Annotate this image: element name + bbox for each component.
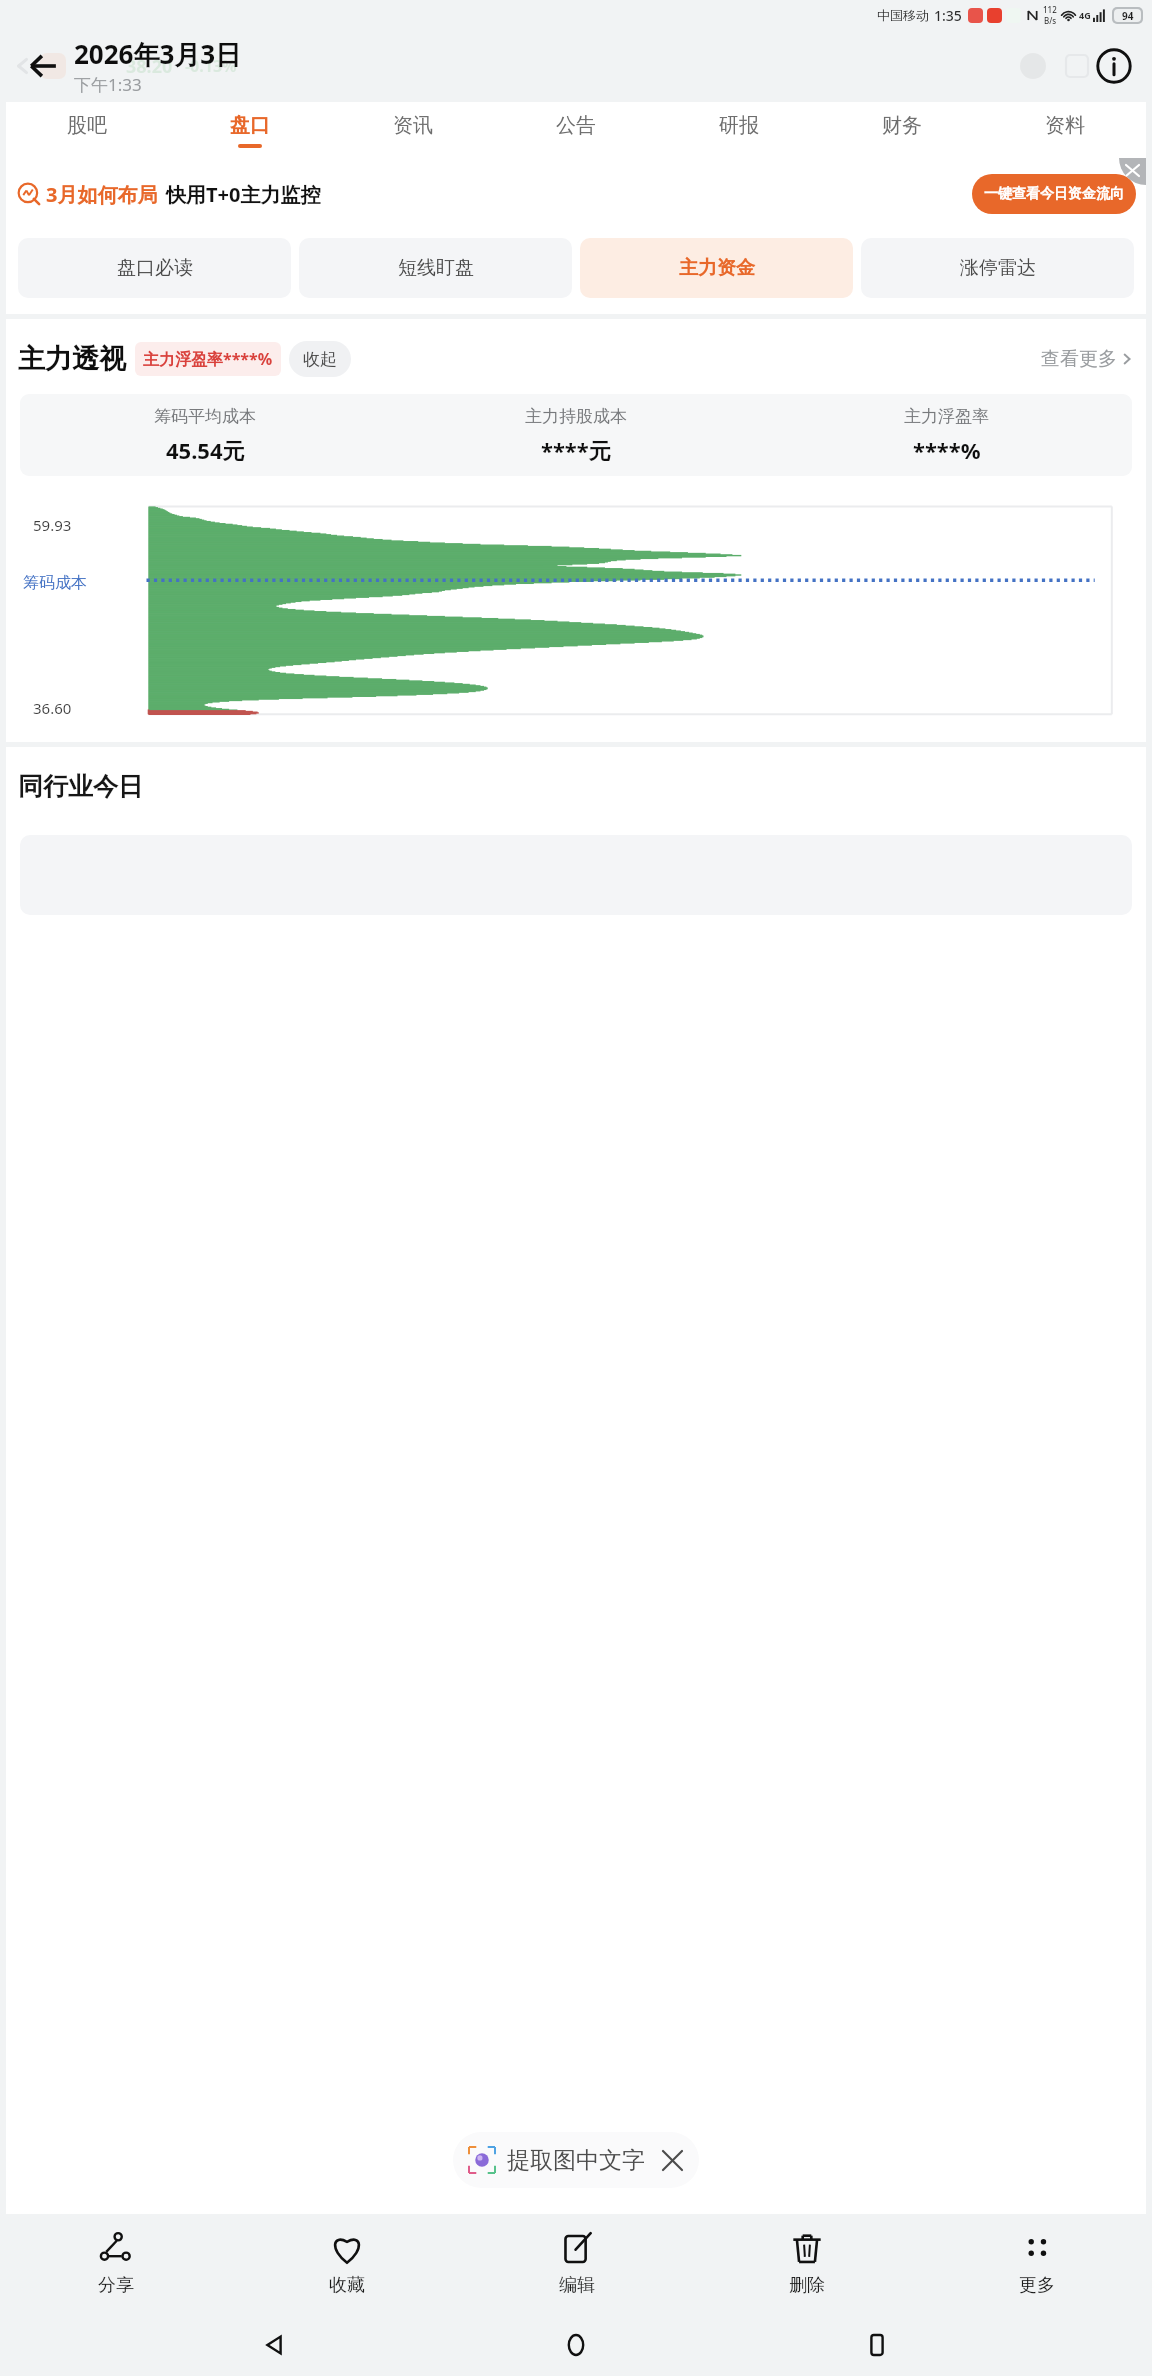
button[interactable]: 3月如何布局	[18, 170, 1136, 218]
staticText: 盘口	[230, 113, 270, 138]
button[interactable]: 研报	[657, 102, 820, 158]
staticText: -0.13%	[185, 55, 237, 77]
staticText: 资料	[1045, 113, 1085, 138]
staticText: 分享	[98, 2274, 134, 2297]
staticText: 主力透视	[18, 342, 126, 376]
staticText: 1:35	[934, 6, 962, 25]
staticText: 查看更多	[1041, 347, 1117, 371]
staticText: 删除	[789, 2274, 825, 2297]
button[interactable]: 股吧	[6, 102, 168, 158]
staticText: 36.60	[33, 698, 72, 718]
button[interactable]: 盘口必读	[18, 238, 291, 298]
staticText: 短线盯盘	[398, 256, 474, 280]
staticText: 筹码成本	[23, 573, 87, 593]
button[interactable]: Back	[249, 2319, 301, 2371]
staticText: 资讯	[393, 113, 433, 138]
staticText: 112	[1043, 4, 1057, 15]
staticText: 38.20	[126, 54, 173, 79]
staticText: 股吧	[67, 113, 107, 138]
button[interactable]: 一键查看今日资金流向	[984, 174, 1124, 214]
staticText: 快用T+0主力监控	[166, 181, 321, 208]
staticText: 公告	[556, 113, 596, 138]
button[interactable]: 查看更多	[1041, 347, 1134, 371]
staticText: 主力浮盈率	[904, 406, 989, 427]
staticText: 4G	[1079, 9, 1091, 21]
staticText: 盘口必读	[117, 256, 193, 280]
staticText: 提取图中文字	[507, 2146, 645, 2175]
staticText: B/s	[1044, 15, 1057, 26]
button[interactable]: 财务	[820, 102, 983, 158]
button[interactable]: Info	[1090, 42, 1138, 90]
button[interactable]: 涨停雷达	[861, 238, 1134, 298]
staticText: 同行业今日	[18, 771, 143, 802]
button[interactable]: Home	[550, 2319, 602, 2371]
staticText: 主力持股成本	[525, 406, 627, 427]
button[interactable]: 短线盯盘	[299, 238, 572, 298]
staticText: 主力资金	[679, 256, 755, 280]
staticText: 涨停雷达	[960, 256, 1036, 280]
staticText: 收藏	[329, 2274, 365, 2297]
button[interactable]: Close	[659, 2147, 685, 2173]
button[interactable]: 盘口	[168, 102, 331, 158]
staticText: 45.54元	[166, 435, 245, 465]
staticText: 一键查看今日资金流向	[984, 185, 1124, 203]
staticText: 更多	[1019, 2274, 1055, 2297]
staticText: 2026年3月3日	[74, 36, 242, 72]
staticText: 94	[1122, 9, 1134, 22]
button[interactable]: 资料	[983, 102, 1146, 158]
button[interactable]: 删除	[692, 2214, 922, 2314]
staticText: 中国移动	[877, 7, 929, 23]
button[interactable]: 提取图中文字	[469, 2132, 685, 2188]
staticText: ****%	[913, 435, 981, 465]
staticText: ****元	[541, 435, 611, 465]
staticText: 主力浮盈率****%	[143, 348, 273, 370]
button[interactable]: 收藏	[231, 2214, 462, 2314]
button[interactable]: 更多	[922, 2214, 1152, 2314]
button[interactable]: 分享	[0, 2214, 231, 2314]
button[interactable]: Back	[20, 43, 66, 89]
staticText: 收起	[303, 349, 337, 370]
button[interactable]: Close ad	[1119, 158, 1146, 185]
staticText: 财务	[882, 113, 922, 138]
button[interactable]: 编辑	[462, 2214, 692, 2314]
staticText: 研报	[719, 113, 759, 138]
button[interactable]: 资讯	[331, 102, 494, 158]
staticText: 59.93	[33, 515, 72, 535]
button[interactable]: 主力资金	[580, 238, 853, 298]
button[interactable]: 收起	[303, 341, 337, 377]
button[interactable]: 主力浮盈率****%	[143, 342, 273, 376]
button[interactable]: 公告	[494, 102, 657, 158]
staticText: 筹码平均成本	[154, 406, 256, 427]
staticText: 3月如何布局	[46, 181, 158, 208]
staticText: 编辑	[559, 2274, 595, 2297]
staticText: 下午1:33	[74, 73, 142, 96]
button[interactable]: Recents	[851, 2319, 903, 2371]
